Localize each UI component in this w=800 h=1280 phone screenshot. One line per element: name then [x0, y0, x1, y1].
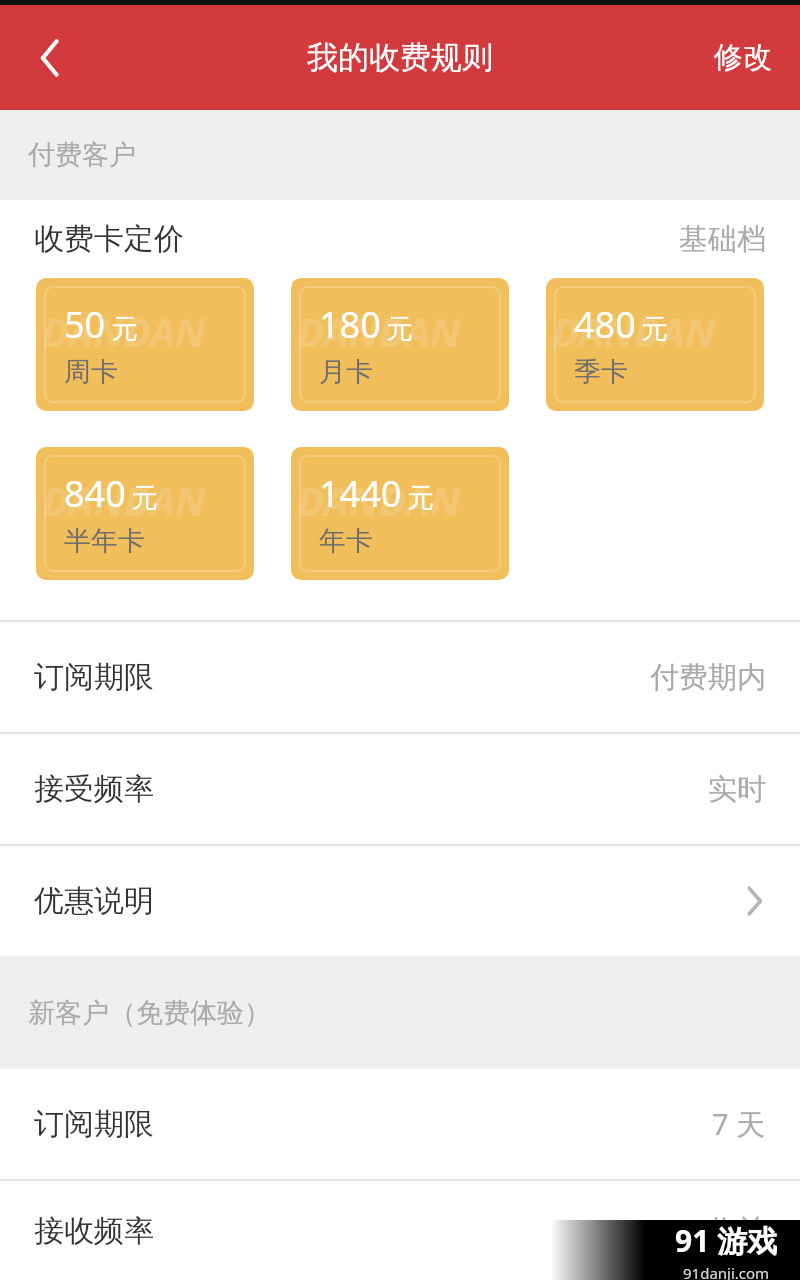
staticText: 付费客户: [28, 138, 136, 172]
staticText: 50: [64, 300, 106, 349]
staticText: DANDAN: [42, 304, 206, 358]
staticText: 元: [407, 481, 434, 515]
button[interactable]: 优惠说明: [0, 846, 800, 956]
staticText: 接收频率: [34, 1212, 154, 1250]
staticText: 91 游戏: [675, 1220, 778, 1261]
button[interactable]: DANDAN: [291, 278, 509, 411]
staticText: 480: [574, 300, 636, 349]
button[interactable]: 接收频率: [0, 1181, 800, 1280]
staticText: 180: [319, 300, 381, 349]
staticText: 收费卡定价: [34, 220, 184, 258]
staticText: 订阅期限: [34, 1105, 154, 1143]
button[interactable]: 接受频率: [0, 734, 800, 844]
staticText: DANDAN: [297, 304, 461, 358]
button[interactable]: 订阅期限: [0, 1069, 800, 1179]
staticText: 元: [386, 312, 413, 346]
staticText: 基础档: [679, 221, 766, 258]
staticText: 月卡: [319, 355, 373, 389]
staticText: DANDAN: [42, 473, 206, 527]
button[interactable]: DANDAN: [36, 447, 254, 580]
staticText: DANDAN: [297, 473, 461, 527]
button[interactable]: DANDAN: [36, 278, 254, 411]
staticText: 实时: [708, 771, 766, 808]
button[interactable]: Back: [0, 5, 100, 110]
button[interactable]: DANDAN: [546, 278, 764, 411]
button[interactable]: DANDAN: [291, 447, 509, 580]
staticText: 元: [131, 481, 158, 515]
staticText: 元: [641, 312, 668, 346]
button[interactable]: 修改: [686, 5, 800, 110]
staticText: 新客户（免费体验）: [28, 996, 271, 1030]
staticText: 周卡: [64, 355, 118, 389]
staticText: DANDAN: [552, 304, 716, 358]
staticText: 接受频率: [34, 770, 154, 808]
staticText: 1440: [319, 469, 402, 518]
staticText: 季卡: [574, 355, 628, 389]
staticText: 半年卡: [64, 524, 145, 558]
staticText: 元: [111, 312, 138, 346]
staticText: 收益: [708, 1212, 766, 1249]
staticText: 我的收费规则: [307, 38, 493, 77]
staticText: 付费期内: [650, 659, 766, 696]
button[interactable]: 订阅期限: [0, 622, 800, 732]
staticText: 840: [64, 469, 126, 518]
staticText: 7 天: [712, 1104, 766, 1144]
staticText: 优惠说明: [34, 882, 154, 920]
staticText: 修改: [714, 39, 772, 76]
staticText: 91danji.com: [683, 1263, 770, 1280]
staticText: 年卡: [319, 524, 373, 558]
staticText: 订阅期限: [34, 658, 154, 696]
